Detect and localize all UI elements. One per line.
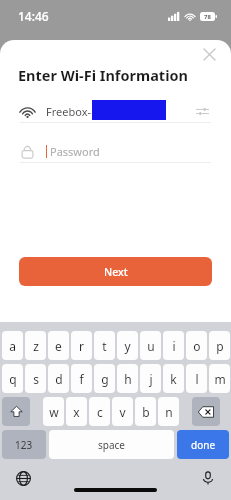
button[interactable]: Close — [195, 40, 223, 68]
button[interactable]: v — [112, 397, 133, 426]
staticText: 14:46 — [18, 8, 49, 24]
staticText: space — [98, 438, 125, 452]
button[interactable]: b — [135, 397, 156, 426]
staticText: a — [9, 338, 16, 354]
staticText: d — [55, 371, 63, 387]
button[interactable]: w — [43, 397, 64, 426]
staticText: y — [124, 338, 131, 354]
staticText: j — [149, 371, 153, 387]
staticText: i — [172, 338, 176, 354]
button[interactable]: x — [66, 397, 87, 426]
staticText: z — [33, 338, 39, 354]
button[interactable]: r — [71, 331, 92, 360]
staticText: e — [55, 338, 62, 354]
staticText: Enter Wi-Fi Information — [18, 65, 188, 85]
button[interactable]: s — [25, 364, 46, 393]
button[interactable]: e — [48, 331, 69, 360]
staticText: h — [124, 371, 132, 387]
button[interactable]: h — [117, 364, 138, 393]
staticText: Next — [104, 265, 128, 279]
staticText: Freebox- — [46, 104, 92, 119]
button[interactable]: u — [140, 331, 161, 360]
staticText: m — [214, 371, 226, 387]
staticText: w — [49, 404, 59, 420]
staticText: s — [33, 371, 39, 387]
button[interactable]: j — [140, 364, 161, 393]
staticText: 123 — [15, 438, 33, 452]
staticText: b — [142, 404, 150, 420]
button[interactable]: y — [117, 331, 138, 360]
staticText: o — [193, 338, 201, 354]
button[interactable]: k — [163, 364, 184, 393]
button[interactable]: p — [209, 331, 230, 360]
staticText: x — [73, 404, 80, 420]
button[interactable]: Next — [19, 257, 212, 286]
button[interactable]: i — [163, 331, 184, 360]
button[interactable]: m — [209, 364, 230, 393]
button[interactable]: q — [2, 364, 23, 393]
button[interactable]: f — [71, 364, 92, 393]
button[interactable]: g — [94, 364, 115, 393]
button[interactable]: Freebox- — [20, 95, 211, 127]
button[interactable]: z — [25, 331, 46, 360]
staticText: f — [79, 371, 84, 387]
button[interactable]: a — [2, 331, 23, 360]
staticText: t — [102, 338, 107, 354]
staticText: p — [216, 338, 224, 354]
button[interactable]: Switch language — [12, 467, 34, 489]
staticText: q — [9, 371, 17, 387]
button[interactable]: d — [48, 364, 69, 393]
button[interactable]: 123 — [2, 430, 46, 459]
staticText: c — [97, 404, 103, 420]
staticText: k — [170, 371, 177, 387]
button[interactable]: done — [177, 430, 229, 459]
staticText: l — [195, 371, 199, 387]
button[interactable]: Shift — [2, 397, 30, 426]
staticText: r — [79, 338, 84, 354]
button[interactable]: l — [186, 364, 207, 393]
staticText: v — [119, 404, 126, 420]
button[interactable]: Wi-Fi settings — [193, 102, 211, 120]
button[interactable]: Voice input — [197, 467, 219, 489]
button[interactable]: n — [158, 397, 179, 426]
button[interactable]: Backspace — [192, 397, 220, 426]
button[interactable]: o — [186, 331, 207, 360]
staticText: n — [165, 404, 173, 420]
staticText: 78 — [204, 13, 211, 21]
button[interactable]: c — [89, 397, 110, 426]
button[interactable]: t — [94, 331, 115, 360]
staticText: Password — [50, 144, 100, 159]
button[interactable]: Password — [20, 135, 211, 167]
staticText: done — [191, 438, 216, 452]
button[interactable]: space — [49, 430, 174, 459]
staticText: u — [147, 338, 155, 354]
staticText: g — [101, 371, 109, 387]
